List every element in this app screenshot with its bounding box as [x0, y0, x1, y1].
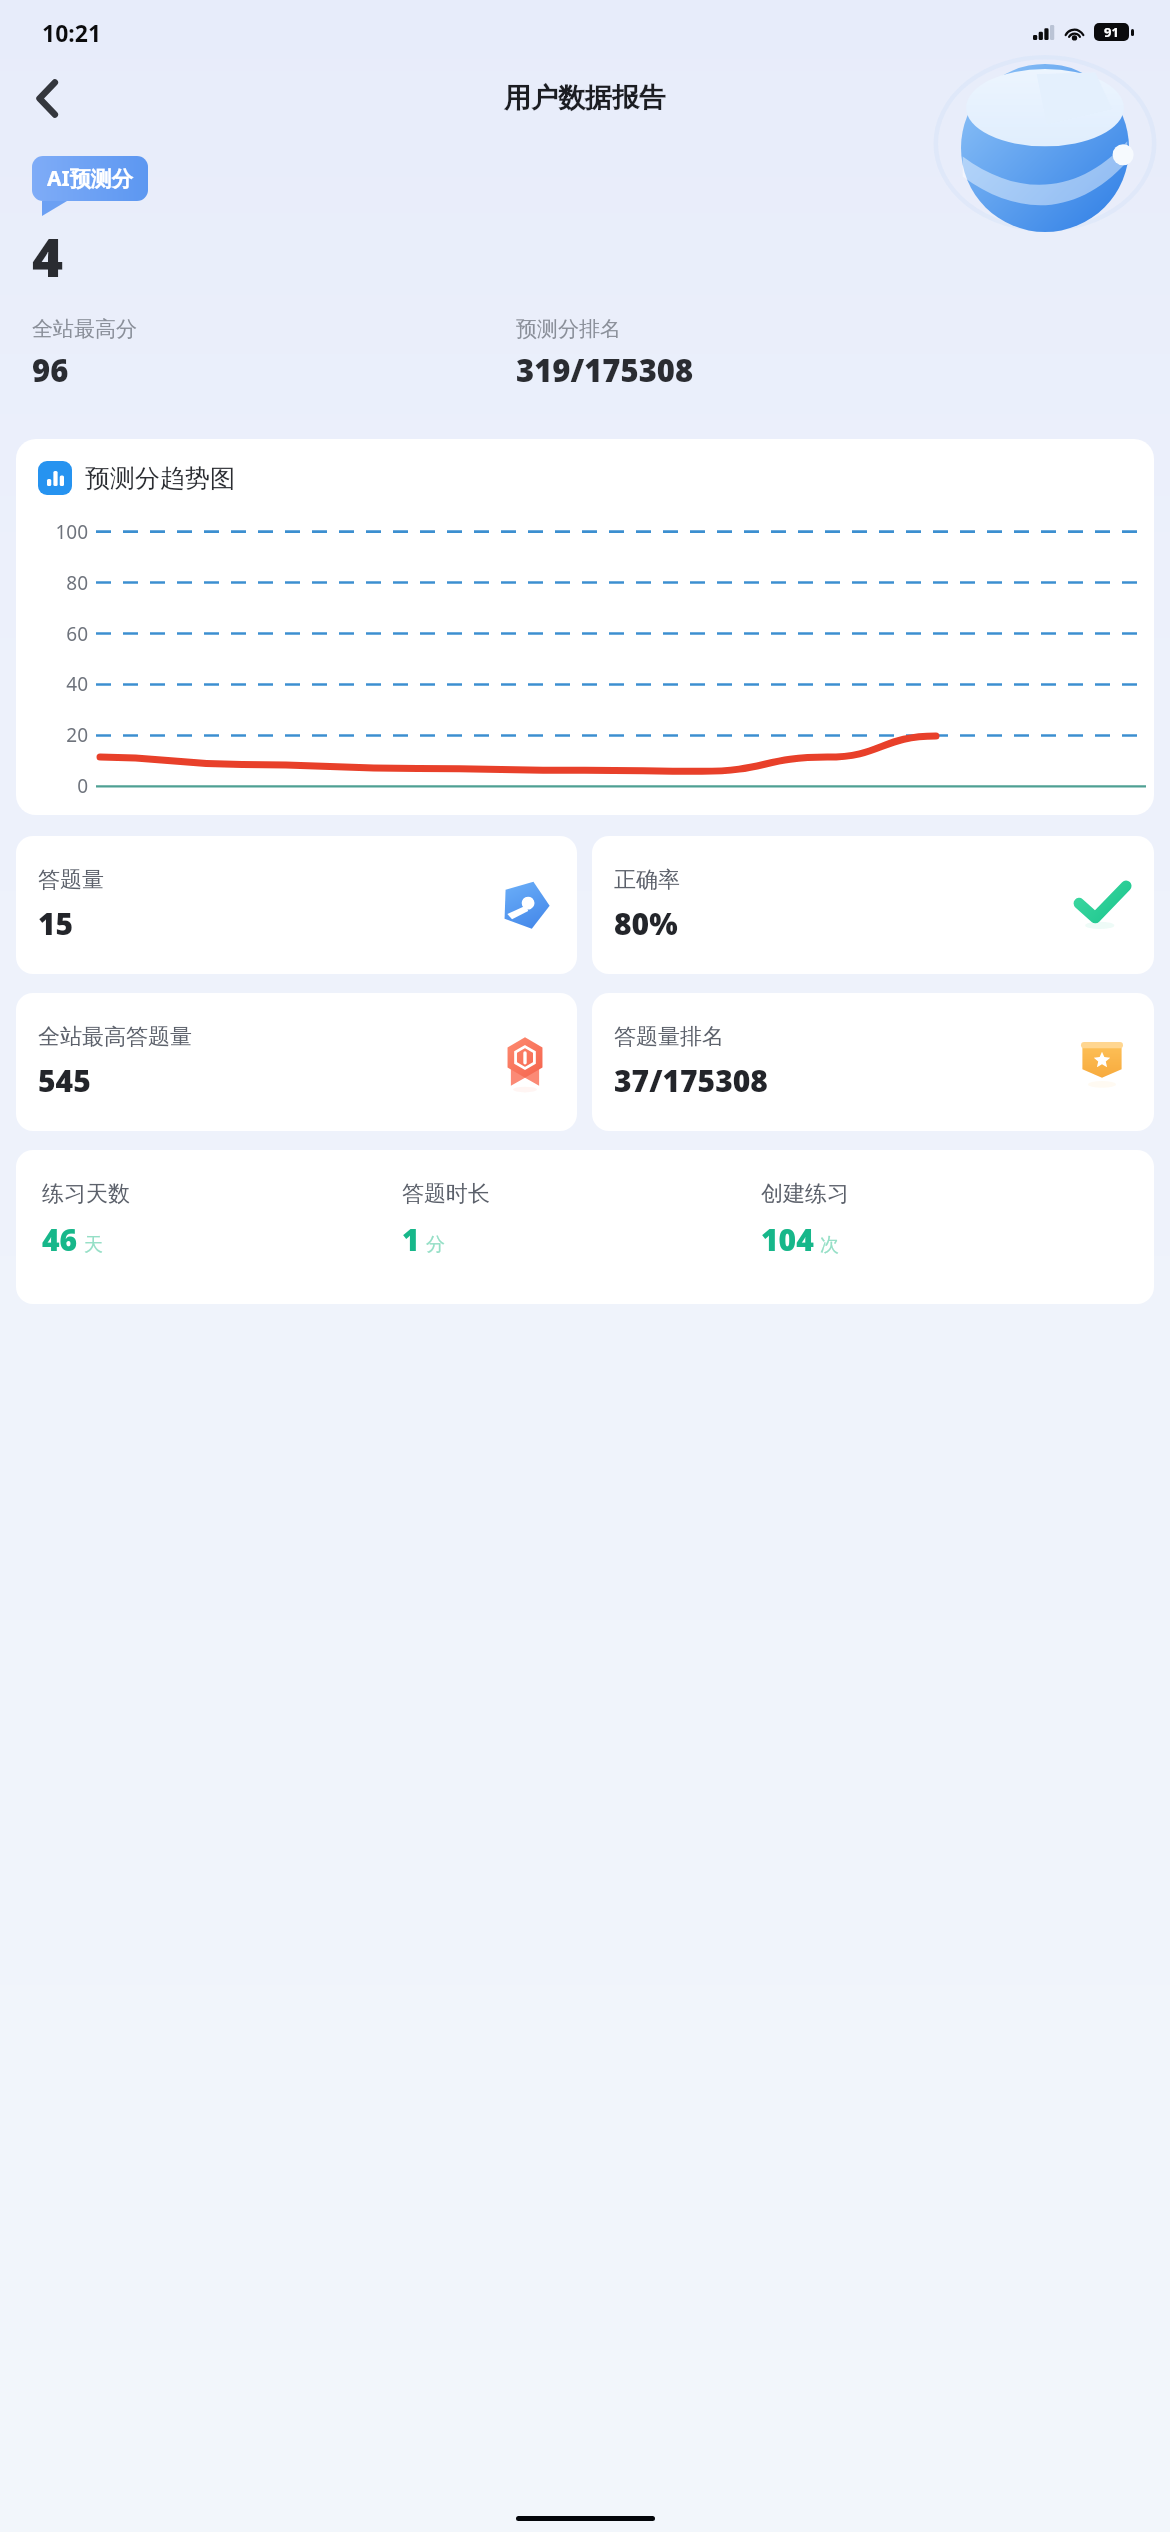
button[interactable]: 全站最高答题量	[16, 993, 577, 1131]
staticText: 20	[26, 722, 88, 748]
staticText: 全站最高答题量	[38, 1023, 192, 1051]
staticText: 答题时长	[402, 1180, 490, 1208]
staticText: 91	[1104, 23, 1119, 41]
staticText: 用户数据报告	[504, 81, 666, 115]
staticText: 37/175308	[614, 1060, 768, 1101]
button[interactable]: 答题量排名	[592, 993, 1154, 1131]
staticText: 15	[38, 903, 74, 944]
staticText: 80	[26, 570, 88, 596]
staticText: 1	[402, 1219, 420, 1260]
staticText: 天	[84, 1233, 103, 1257]
staticText: 正确率	[614, 866, 680, 894]
staticText: 10:21	[42, 17, 102, 48]
staticText: 100	[26, 519, 88, 545]
button[interactable]: Back	[16, 67, 78, 129]
staticText: AI预测分	[47, 164, 133, 193]
staticText: 答题量排名	[614, 1023, 724, 1051]
staticText: 练习天数	[42, 1180, 130, 1208]
staticText: 60	[26, 621, 88, 647]
staticText: 全站最高分	[32, 316, 137, 342]
staticText: 次	[820, 1233, 839, 1257]
staticText: 40	[26, 671, 88, 697]
staticText: 创建练习	[761, 1180, 849, 1208]
staticText: 分	[426, 1233, 445, 1257]
button[interactable]: 答题量	[16, 836, 577, 974]
staticText: 80%	[614, 903, 678, 944]
button[interactable]: 预测分趋势图	[16, 439, 1154, 815]
staticText: 96	[32, 349, 69, 391]
staticText: 545	[38, 1060, 91, 1101]
staticText: 答题量	[38, 866, 104, 894]
button[interactable]: 练习天数	[16, 1150, 1154, 1304]
staticText: 预测分趋势图	[85, 463, 235, 494]
staticText: 319/175308	[516, 349, 694, 391]
staticText: 0	[26, 773, 88, 799]
staticText: 预测分排名	[516, 316, 621, 342]
button[interactable]: 正确率	[592, 836, 1154, 974]
staticText: 46	[42, 1219, 78, 1260]
staticText: 4	[32, 220, 64, 292]
staticText: 104	[761, 1219, 814, 1260]
